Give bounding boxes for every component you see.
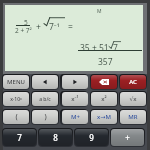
button[interactable]: Eight (39, 129, 72, 146)
button[interactable]: Close bracket (32, 110, 58, 124)
staticText: 5 (24, 18, 28, 27)
staticText: 7 (113, 42, 118, 54)
staticText: M (97, 8, 102, 15)
staticText: √x (129, 95, 137, 103)
staticText: + (36, 21, 41, 33)
button[interactable]: Store to memory (91, 110, 117, 124)
staticText: ) (44, 112, 47, 122)
staticText: + (125, 132, 130, 143)
staticText: a b/c (39, 96, 51, 103)
button[interactable]: All clear (120, 75, 146, 89)
staticText: 9 (89, 132, 94, 143)
staticText: 8 (53, 132, 58, 143)
staticText: 7⁻¹ (49, 21, 60, 33)
staticText: x→M (97, 113, 111, 121)
staticText: 357 (98, 56, 113, 68)
button[interactable]: Square (91, 92, 117, 106)
staticText: 2 + 7² (15, 26, 32, 35)
staticText: x·10ˣ (10, 96, 22, 103)
button[interactable]: Memory plus (62, 110, 88, 124)
button[interactable]: Plus (111, 129, 144, 146)
staticText: MR (128, 113, 138, 121)
button[interactable]: Cursor left (32, 75, 58, 89)
button[interactable]: Menu (3, 75, 29, 89)
staticText: MENU (7, 78, 25, 86)
staticText: 7 (17, 132, 22, 143)
button[interactable]: Exponent (3, 92, 29, 106)
button[interactable]: Square root (120, 92, 146, 106)
button[interactable]: Nine (75, 129, 108, 146)
button[interactable]: Cursor right (62, 75, 88, 89)
button[interactable]: Reciprocal (62, 92, 88, 106)
staticText: AC (129, 78, 137, 86)
button[interactable]: Fraction (32, 92, 58, 106)
staticText: M+ (71, 113, 80, 121)
staticText: x⁻¹ (71, 95, 79, 103)
button[interactable]: Open bracket (3, 110, 29, 124)
staticText: x² (101, 95, 107, 103)
button[interactable]: Delete (91, 75, 117, 89)
button[interactable]: Memory recall (120, 110, 146, 124)
staticText: 35 + 51 (80, 42, 109, 54)
staticText: = (68, 21, 73, 33)
button[interactable]: Seven (3, 129, 36, 146)
staticText: ( (15, 112, 18, 122)
